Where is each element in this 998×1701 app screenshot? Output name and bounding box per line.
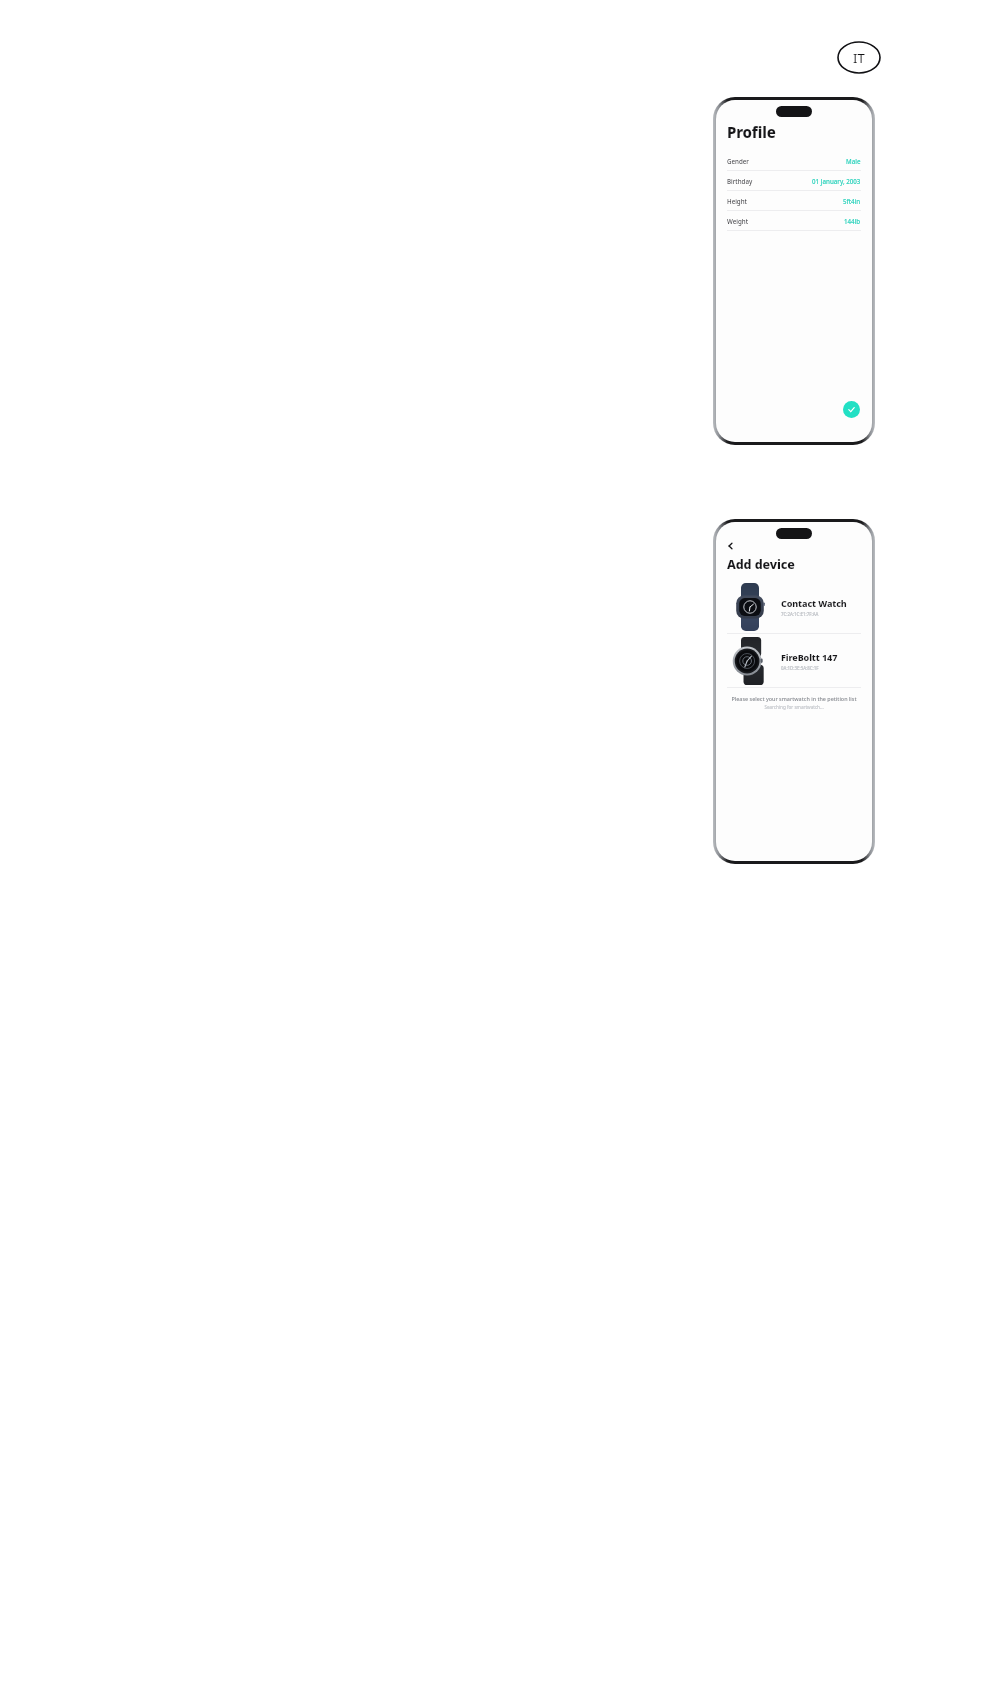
staticText: Birthday	[727, 177, 753, 185]
button[interactable]: Back	[727, 539, 741, 553]
button[interactable]: Weight	[727, 211, 861, 231]
staticText: IT	[853, 49, 865, 67]
staticText: Add device	[727, 556, 795, 573]
staticText: Searching for smartwatch...	[727, 704, 861, 710]
staticText: Male	[846, 157, 861, 165]
staticText: 01 January, 2003	[812, 177, 861, 185]
button[interactable]: Gender	[727, 151, 861, 171]
button[interactable]: Contact Watch	[727, 580, 861, 633]
staticText: 144lb	[844, 217, 861, 225]
staticText: 7C:2A:1C:E1:7F:AA	[781, 611, 819, 617]
button[interactable]: FireBoltt 147	[727, 634, 861, 687]
button[interactable]: Height	[727, 191, 861, 211]
staticText: 0A:1D:3E:5A:8C:1F	[781, 665, 819, 671]
staticText: Gender	[727, 157, 749, 165]
staticText: FireBoltt 147	[781, 651, 838, 663]
staticText: Profile	[727, 122, 776, 142]
button[interactable]: IT logo	[838, 42, 880, 73]
staticText: 5ft4in	[843, 197, 861, 205]
staticText: Please select your smartwatch in the pet…	[727, 695, 861, 702]
button[interactable]: Confirm	[843, 401, 860, 418]
staticText: Height	[727, 197, 747, 205]
staticText: Weight	[727, 217, 749, 225]
staticText: Contact Watch	[781, 597, 847, 609]
button[interactable]: Birthday	[727, 171, 861, 191]
